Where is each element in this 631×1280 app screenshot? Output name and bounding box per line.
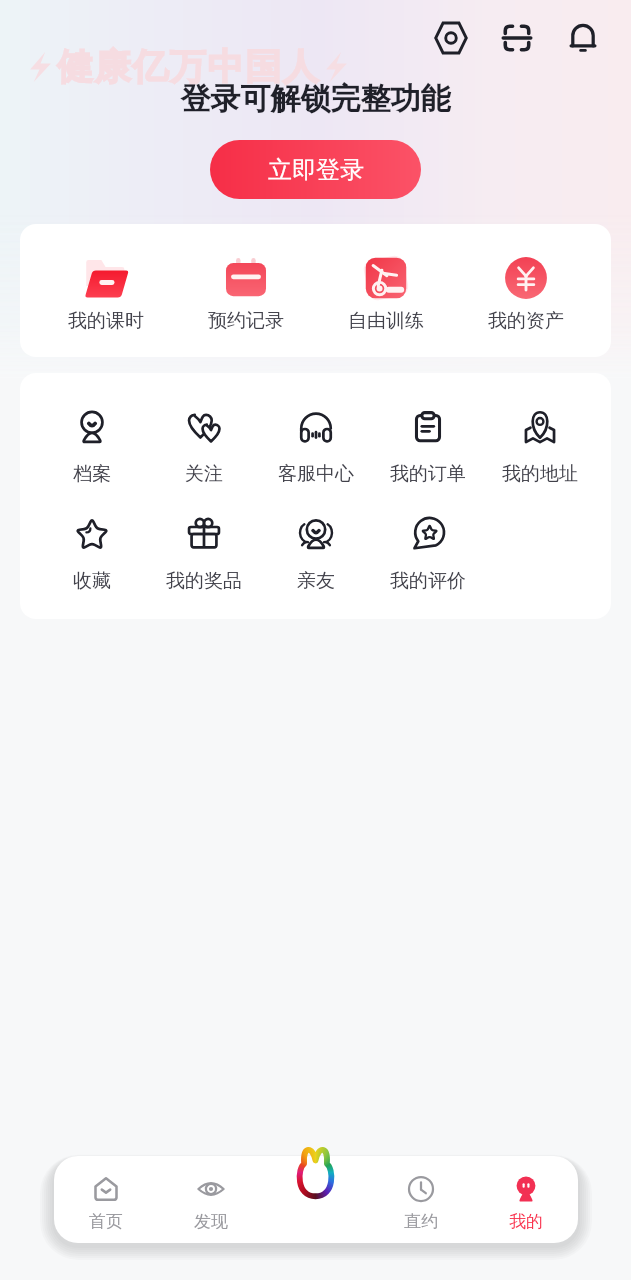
button[interactable]: 关注 xyxy=(148,409,260,486)
staticText: 客服中心 xyxy=(278,462,354,486)
button[interactable]: Settings xyxy=(429,16,473,60)
staticText: 我的订单 xyxy=(390,462,466,486)
staticText: 我的评价 xyxy=(390,569,466,593)
button[interactable]: 收藏 xyxy=(35,516,148,593)
staticText: 自由训练 xyxy=(348,309,424,333)
staticText: 我的奖品 xyxy=(166,569,242,593)
button[interactable]: Notifications xyxy=(561,16,605,60)
button[interactable]: 我的地址 xyxy=(484,409,596,486)
button[interactable]: 立即登录 xyxy=(210,140,421,199)
staticText: 关注 xyxy=(185,462,223,486)
staticText: 立即登录 xyxy=(268,155,364,185)
staticText: 我的资产 xyxy=(488,309,564,333)
staticText: 发现 xyxy=(194,1211,228,1232)
button[interactable]: 亲友 xyxy=(260,516,372,593)
button[interactable]: 直约 xyxy=(368,1174,473,1232)
staticText: 我的地址 xyxy=(502,462,578,486)
button[interactable]: 我的 xyxy=(473,1174,578,1232)
button[interactable]: Scan xyxy=(495,16,539,60)
staticText: 直约 xyxy=(404,1211,438,1232)
staticText: 收藏 xyxy=(73,569,111,593)
staticText: 健康亿万中国人 xyxy=(57,44,321,89)
staticText: 亲友 xyxy=(297,569,335,593)
button[interactable]: 我的课时 xyxy=(35,255,176,357)
button[interactable]: 首页 xyxy=(54,1174,158,1232)
staticText: 我的 xyxy=(509,1211,543,1232)
button[interactable]: 预约记录 xyxy=(176,255,316,357)
button[interactable]: 我的资产 xyxy=(456,255,596,357)
button[interactable]: 客服中心 xyxy=(260,409,372,486)
button[interactable]: Home xyxy=(284,1140,347,1203)
button[interactable]: 我的奖品 xyxy=(148,516,260,593)
staticText: 首页 xyxy=(89,1211,123,1232)
staticText: 档案 xyxy=(73,462,111,486)
staticText: 登录可解锁完整功能 xyxy=(0,80,631,118)
button[interactable]: 档案 xyxy=(35,409,148,486)
button[interactable]: 自由训练 xyxy=(316,255,456,357)
button[interactable]: 发现 xyxy=(158,1174,263,1232)
button[interactable]: 我的订单 xyxy=(372,409,484,486)
staticText: 我的课时 xyxy=(68,309,144,333)
button[interactable]: 我的评价 xyxy=(372,516,484,593)
staticText: 预约记录 xyxy=(208,309,284,333)
